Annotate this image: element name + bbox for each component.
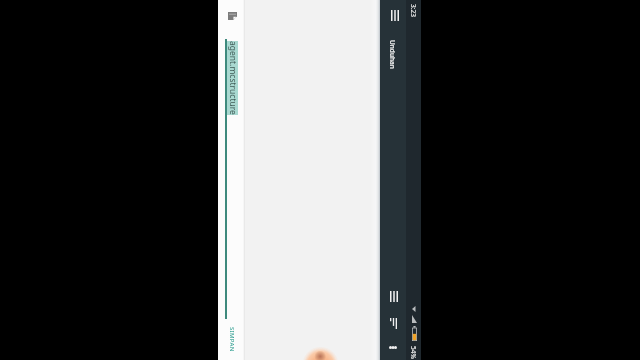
button[interactable]: Open navigation drawer xyxy=(385,5,406,26)
button[interactable]: More options xyxy=(383,337,404,358)
staticText: 54% xyxy=(409,346,418,359)
button[interactable]: Sort xyxy=(383,313,404,334)
button[interactable]: SIMPAN xyxy=(223,321,241,357)
staticText: SIMPAN xyxy=(228,327,236,352)
staticText: Unduhan xyxy=(388,40,397,69)
staticText: agent.mcstructure xyxy=(227,41,239,115)
staticText: 3:23 xyxy=(409,4,418,17)
button[interactable]: View as list xyxy=(384,286,405,307)
